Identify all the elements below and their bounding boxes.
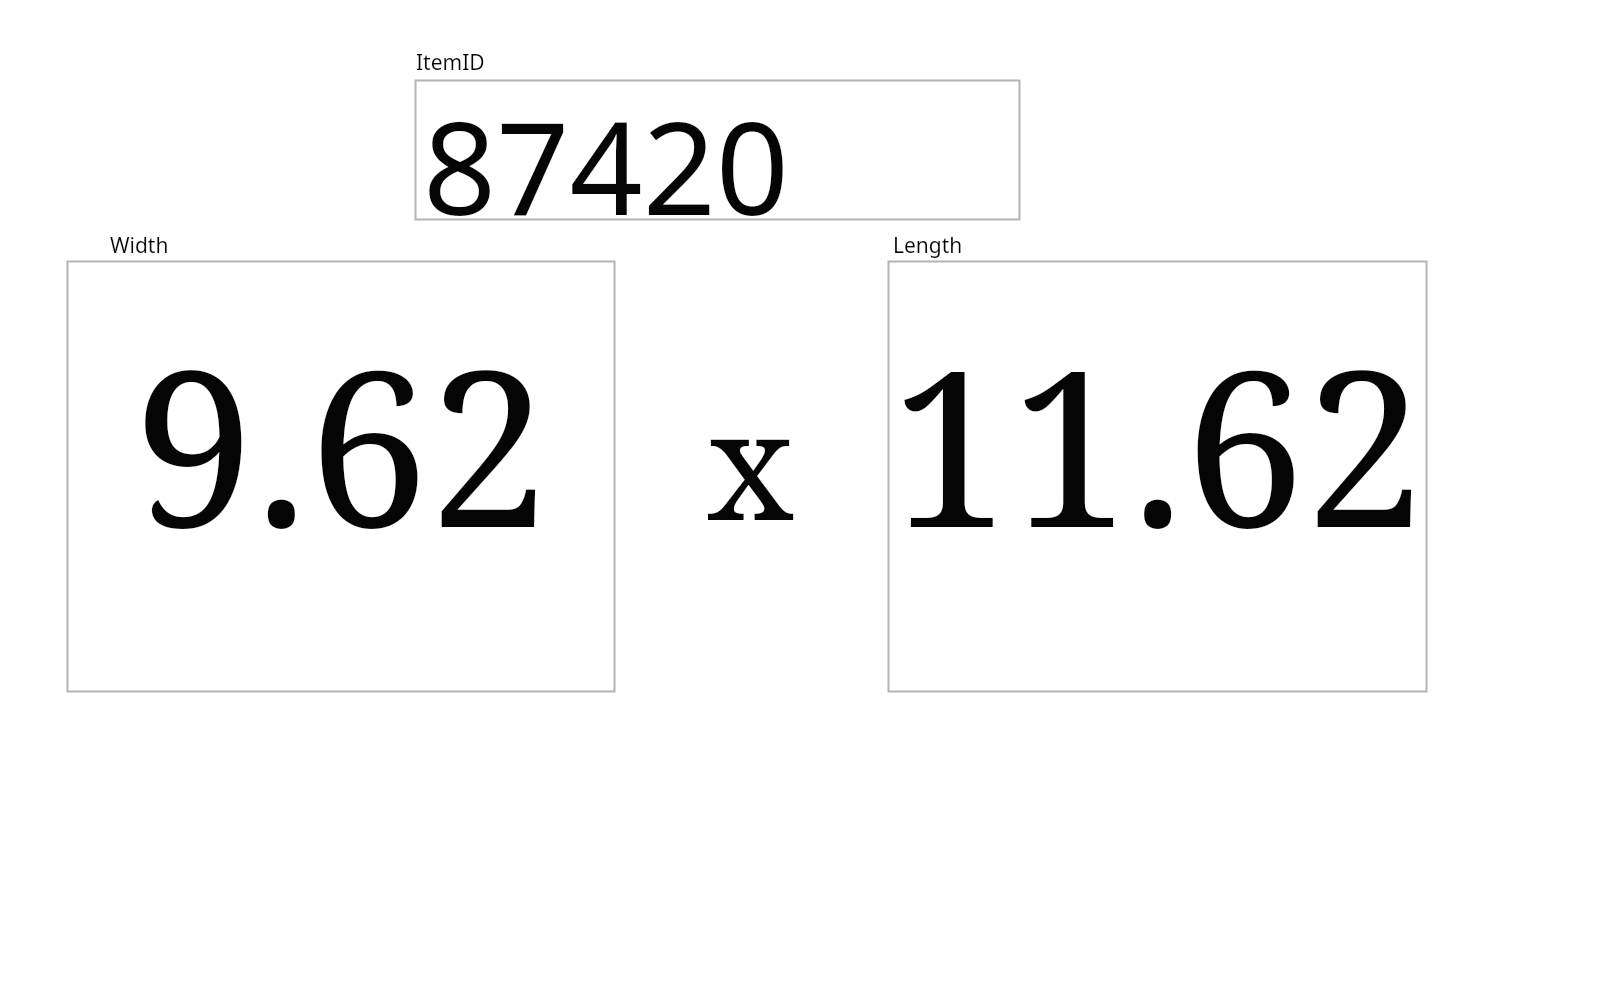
staticText: 9.62 (134, 297, 549, 590)
staticText: Length (893, 231, 963, 259)
staticText: 11.62 (890, 297, 1425, 590)
staticText: 87420 (423, 78, 790, 218)
button[interactable]: 87420 (415, 80, 1020, 220)
staticText: ItemID (416, 48, 485, 76)
button[interactable]: 9.62 (67, 261, 615, 692)
button[interactable]: 11.62 (888, 261, 1427, 692)
staticText: x (707, 360, 794, 540)
staticText: Width (110, 231, 169, 259)
